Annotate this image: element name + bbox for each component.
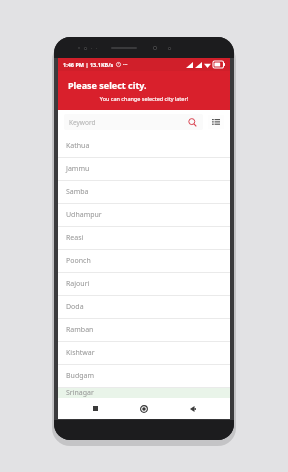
button[interactable]: Recents	[83, 398, 107, 419]
staticText: Please select city.	[68, 79, 147, 91]
button[interactable]: Rajouri	[58, 272, 230, 295]
button[interactable]: Udhampur	[58, 203, 230, 226]
button[interactable]: Srinagar	[58, 387, 230, 398]
staticText: 1:46 PM | 13.1KB/s	[63, 61, 114, 68]
button[interactable]: Doda	[58, 295, 230, 318]
button[interactable]: Reasi	[58, 226, 230, 249]
staticText: Budgam	[66, 371, 94, 381]
staticText: Reasi	[66, 233, 84, 243]
button[interactable]: Back	[181, 398, 205, 419]
staticText: Udhampur	[66, 210, 102, 220]
button[interactable]: Home	[132, 398, 156, 419]
button[interactable]: Keyword	[64, 114, 203, 130]
staticText: Ramban	[66, 325, 94, 335]
staticText: You can change selected city later!	[68, 95, 220, 102]
button[interactable]: Kathua	[58, 134, 230, 157]
staticText: Kathua	[66, 141, 90, 151]
staticText: Poonch	[66, 256, 91, 266]
button[interactable]: Kishtwar	[58, 341, 230, 364]
button[interactable]: List view	[208, 115, 224, 129]
button[interactable]: Search	[186, 116, 198, 128]
staticText: Jammu	[66, 164, 90, 174]
staticText: Kishtwar	[66, 348, 95, 358]
staticText: Doda	[66, 302, 84, 312]
staticText: Srinagar	[66, 388, 94, 398]
button[interactable]: Poonch	[58, 249, 230, 272]
staticText: Samba	[66, 187, 89, 197]
button[interactable]: Budgam	[58, 364, 230, 387]
staticText: Keyword	[69, 118, 96, 127]
staticText: •••	[123, 62, 128, 67]
button[interactable]: Ramban	[58, 318, 230, 341]
staticText: Rajouri	[66, 279, 90, 289]
button[interactable]: Samba	[58, 180, 230, 203]
button[interactable]: Jammu	[58, 157, 230, 180]
